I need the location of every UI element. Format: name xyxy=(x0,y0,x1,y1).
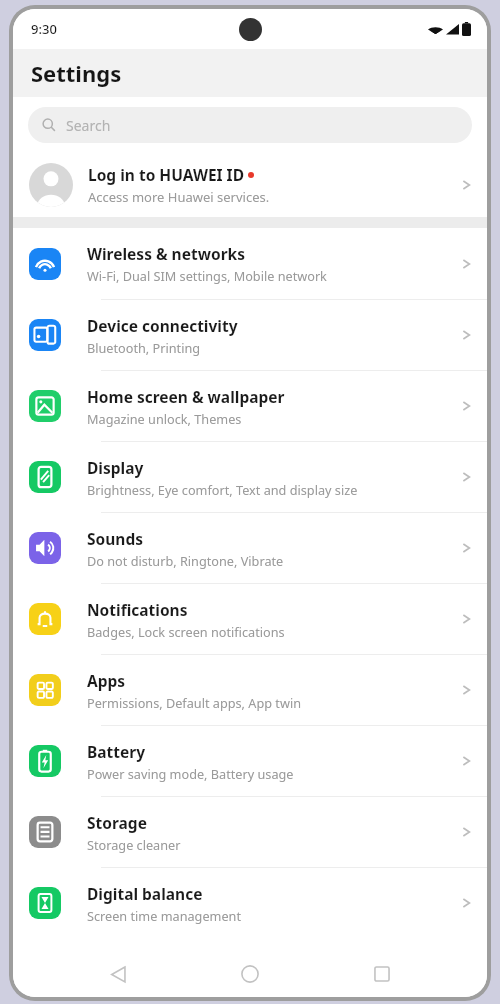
button[interactable]: Home screen & wallpaper xyxy=(13,371,487,441)
staticText: Magazine unlock, Themes xyxy=(87,410,242,427)
button[interactable]: Display xyxy=(13,442,487,512)
staticText: Sounds xyxy=(87,528,143,549)
staticText: 9:30 xyxy=(31,20,57,38)
staticText: Permissions, Default apps, App twin xyxy=(87,694,301,711)
staticText: Storage xyxy=(87,812,147,833)
button[interactable]: Apps xyxy=(13,655,487,725)
button[interactable]: Storage xyxy=(13,797,487,867)
staticText: Battery xyxy=(87,741,146,762)
staticText: Access more Huawei services. xyxy=(88,188,270,206)
button[interactable]: Device connectivity xyxy=(13,300,487,370)
staticText: Settings xyxy=(31,58,122,88)
button[interactable]: Back xyxy=(91,951,145,997)
staticText: Badges, Lock screen notifications xyxy=(87,623,285,640)
staticText: Screen time management xyxy=(87,907,241,924)
button[interactable]: Search xyxy=(28,107,472,143)
staticText: Home screen & wallpaper xyxy=(87,386,285,407)
staticText: Bluetooth, Printing xyxy=(87,339,201,356)
staticText: Apps xyxy=(87,670,126,691)
button[interactable]: Log in to HUAWEI ID xyxy=(13,152,487,217)
button[interactable]: Notifications xyxy=(13,584,487,654)
staticText: Storage cleaner xyxy=(87,836,181,853)
button[interactable]: Recents xyxy=(355,951,409,997)
staticText: Log in to HUAWEI ID xyxy=(88,164,244,185)
staticText: Notifications xyxy=(87,599,188,620)
button[interactable]: Home xyxy=(223,951,277,997)
staticText: Do not disturb, Ringtone, Vibrate xyxy=(87,552,284,569)
staticText: Power saving mode, Battery usage xyxy=(87,765,294,782)
staticText: Device connectivity xyxy=(87,315,238,336)
staticText: Display xyxy=(87,457,144,478)
staticText: Wireless & networks xyxy=(87,243,245,264)
staticText: Search xyxy=(66,116,111,135)
button[interactable]: Battery xyxy=(13,726,487,796)
button[interactable]: Digital balance xyxy=(13,868,487,938)
button[interactable]: Wireless & networks xyxy=(13,228,487,299)
staticText: Brightness, Eye comfort, Text and displa… xyxy=(87,481,358,498)
staticText: Wi-Fi, Dual SIM settings, Mobile network xyxy=(87,267,327,284)
button[interactable]: Sounds xyxy=(13,513,487,583)
staticText: Digital balance xyxy=(87,883,203,904)
